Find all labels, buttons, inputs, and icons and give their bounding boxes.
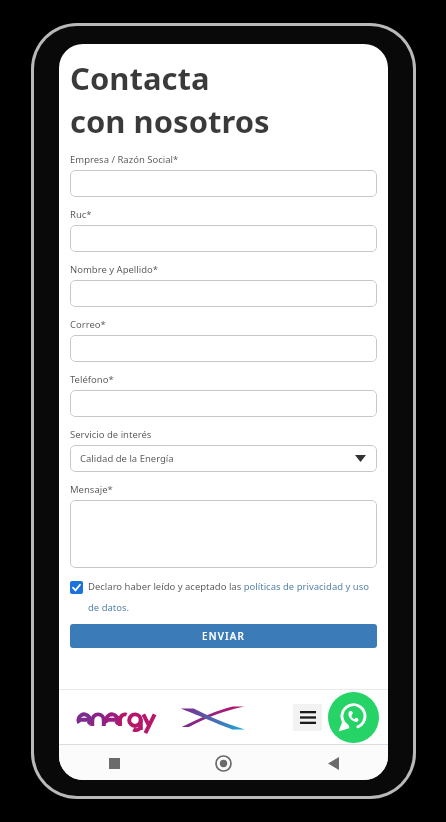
staticText: Contacta: [70, 57, 210, 99]
staticText: Declaro haber leído y aceptado las polít…: [88, 580, 377, 614]
staticText: Mensaje*: [70, 483, 113, 496]
button[interactable]: WhatsApp: [328, 692, 379, 743]
button[interactable]: [70, 390, 377, 417]
button[interactable]: Calidad de la Energía: [70, 445, 377, 472]
button[interactable]: Back: [318, 748, 348, 778]
button[interactable]: [70, 335, 377, 362]
staticText: Calidad de la Energía: [80, 452, 174, 465]
staticText: Correo*: [70, 318, 106, 331]
button[interactable]: Recent apps: [99, 748, 129, 778]
button[interactable]: Home: [208, 748, 238, 778]
staticText: ENVIAR: [202, 629, 246, 643]
staticText: con nosotros: [70, 100, 270, 142]
button[interactable]: Menu: [293, 704, 322, 731]
button[interactable]: [70, 500, 377, 568]
button[interactable]: ENVIAR: [70, 624, 377, 648]
button[interactable]: [70, 225, 377, 252]
staticText: Nombre y Apellido*: [70, 263, 159, 276]
staticText: Servicio de interés: [70, 428, 152, 441]
staticText: Empresa / Razón Social*: [70, 153, 179, 166]
button[interactable]: Accept privacy policy: [70, 581, 83, 594]
staticText: Ruc*: [70, 208, 92, 221]
button[interactable]: [70, 170, 377, 197]
staticText: Teléfono*: [70, 373, 114, 386]
button[interactable]: [70, 280, 377, 307]
